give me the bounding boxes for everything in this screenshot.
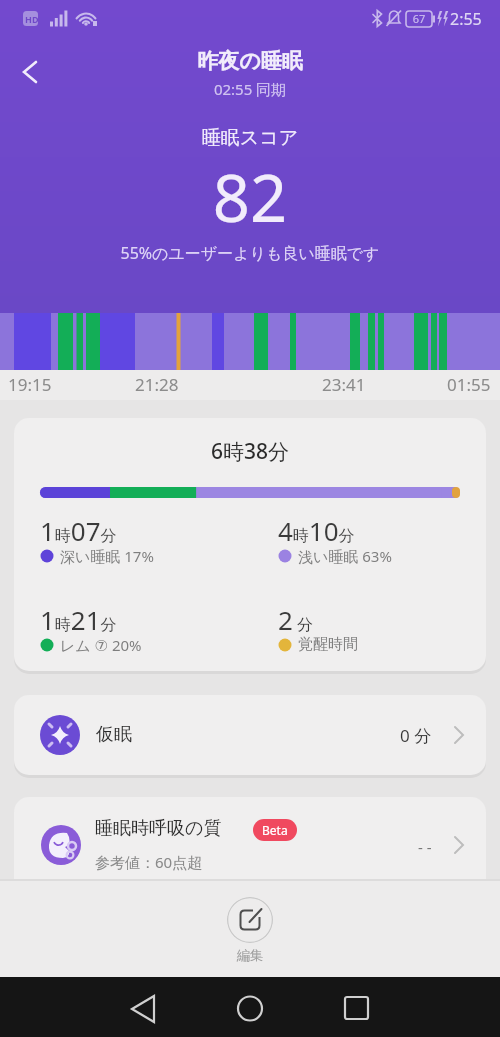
staticText: 編集	[0, 947, 500, 964]
staticText: 2 分	[278, 602, 314, 637]
staticText: 深い睡眠 17%	[60, 546, 154, 566]
staticText: 0 分	[400, 724, 432, 747]
staticText: 02:55 同期	[0, 79, 500, 99]
button[interactable]	[332, 984, 380, 1030]
staticText: Beta	[262, 822, 288, 838]
staticText: 浅い睡眠 63%	[298, 546, 392, 566]
staticText: 参考値：60点超	[95, 852, 203, 872]
staticText: 睡眠スコア	[0, 126, 500, 150]
staticText: レム ⑦ 20%	[60, 635, 142, 655]
staticText: 昨夜の睡眠	[0, 48, 500, 74]
staticText: 仮眠	[96, 723, 132, 746]
staticText: 82	[0, 153, 500, 242]
button[interactable]: 仮眠	[14, 695, 486, 775]
staticText: 1時21分	[40, 602, 117, 637]
staticText: HD	[25, 13, 39, 25]
staticText: 01:55	[447, 373, 491, 396]
button[interactable]	[10, 55, 50, 91]
button[interactable]	[227, 897, 273, 943]
staticText: 1時07分	[40, 513, 117, 548]
staticText: 2:55	[450, 8, 482, 30]
button[interactable]	[118, 984, 166, 1030]
staticText: 6時38分	[14, 437, 486, 466]
staticText: 睡眠時呼吸の質	[95, 817, 222, 840]
button[interactable]	[226, 984, 274, 1030]
staticText: 19:15	[8, 373, 52, 396]
staticText: 23:41	[322, 373, 366, 396]
staticText: - -	[418, 837, 432, 857]
staticText: 55%のユーザーよりも良い睡眠です	[0, 242, 500, 264]
staticText: 4時10分	[278, 513, 355, 548]
staticText: 21:28	[135, 373, 179, 396]
staticText: 覚醒時間	[298, 635, 358, 654]
staticText: 67	[406, 11, 432, 27]
button[interactable]: 睡眠時呼吸の質	[14, 797, 486, 884]
